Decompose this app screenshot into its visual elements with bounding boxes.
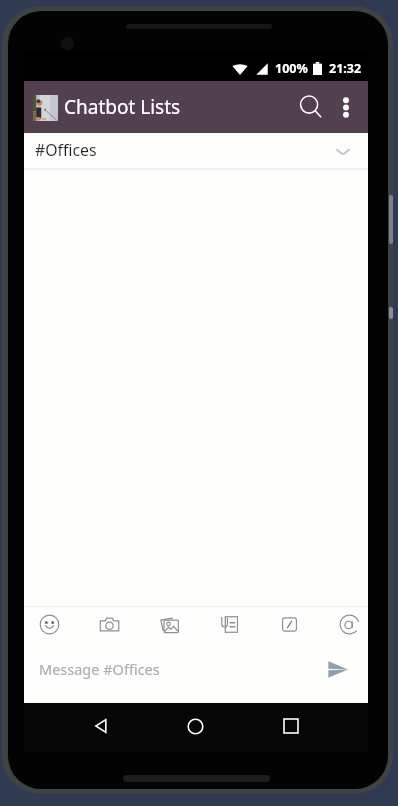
staticText: #Offices [35, 139, 97, 161]
button[interactable]: Message #Offices [24, 645, 368, 703]
staticText: 21:32 [329, 60, 362, 77]
button[interactable]: Back [81, 706, 121, 746]
staticText: Message #Offices [39, 659, 160, 679]
button[interactable]: #Offices [24, 133, 368, 168]
button[interactable]: Workspace [33, 95, 58, 121]
button[interactable]: Home [175, 706, 215, 746]
button[interactable]: Slash command [272, 607, 306, 641]
button[interactable]: Attach file [212, 607, 246, 641]
button[interactable]: Emoji [32, 607, 66, 641]
staticText: Chatbot Lists [64, 94, 181, 120]
button[interactable]: Recents [271, 706, 311, 746]
button[interactable]: Send [321, 652, 355, 686]
button[interactable]: Search [278, 84, 324, 130]
button[interactable]: Camera [92, 607, 126, 641]
button[interactable]: Gallery [152, 607, 186, 641]
button[interactable]: More options [324, 85, 368, 129]
button[interactable]: Mention [332, 607, 366, 641]
staticText: 100% [275, 60, 308, 77]
